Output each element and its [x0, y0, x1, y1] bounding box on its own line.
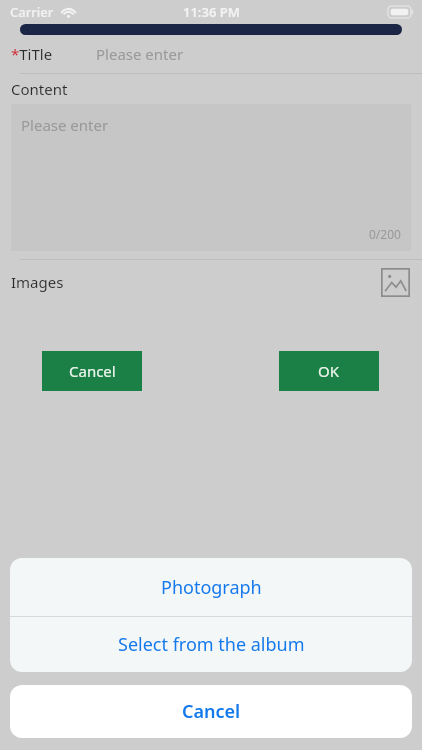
staticText: Please enter — [21, 115, 109, 135]
staticText: Please enter — [96, 44, 184, 64]
staticText: Cancel — [69, 361, 116, 381]
staticText: Cancel — [182, 699, 241, 724]
staticText: OK — [318, 361, 340, 381]
staticText: Content — [11, 79, 68, 99]
button[interactable]: Cancel — [42, 351, 142, 391]
button[interactable]: Add image — [379, 266, 411, 298]
staticText: Images — [11, 272, 64, 292]
button[interactable]: *TiTle — [0, 35, 422, 73]
button[interactable]: OK — [279, 351, 379, 391]
staticText: 11:36 PM — [183, 3, 240, 21]
staticText: *TiTle — [11, 44, 53, 64]
button[interactable]: Cancel — [10, 685, 412, 738]
button[interactable]: Please enter — [11, 104, 411, 251]
staticText: Carrier — [10, 3, 54, 21]
button[interactable]: Select from the album — [10, 617, 412, 672]
staticText: Select from the album — [118, 632, 305, 657]
button[interactable]: Photograph — [10, 558, 412, 616]
staticText: Photograph — [161, 575, 262, 600]
staticText: 0/200 — [369, 226, 401, 242]
